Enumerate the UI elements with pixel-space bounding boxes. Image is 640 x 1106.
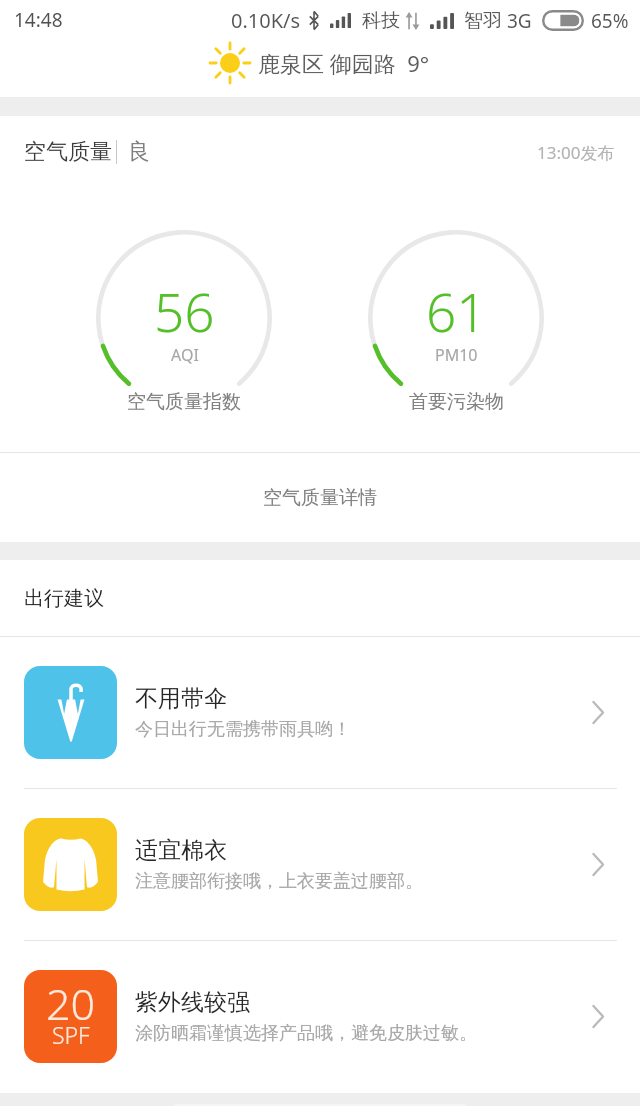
staticText: 紫外线较强 [135,988,250,1017]
staticText: 不用带伞 [135,684,227,713]
staticText: 出行建议 [24,586,104,611]
button[interactable]: 20 [0,941,640,1092]
button[interactable]: 空气质量详情 [0,453,640,542]
staticText: 今日出行无需携带雨具哟！ [135,718,351,741]
staticText: SPF [52,1019,90,1050]
other: 不用带伞 [592,702,604,723]
staticText: PM10 [435,344,478,366]
staticText: 20 [46,974,96,1033]
staticText: AQI [171,344,199,366]
other: 适宜棉衣 [592,854,604,875]
button[interactable]: 不用带伞 [0,637,640,788]
staticText: 注意腰部衔接哦，上衣要盖过腰部。 [135,870,423,893]
staticText: 良 [128,138,150,166]
staticText: 首要污染物 [409,390,504,414]
staticText: 61 [426,275,487,347]
staticText: 56 [154,275,215,347]
staticText: 适宜棉衣 [135,836,227,865]
staticText: 智羽 [464,9,502,33]
staticText: 科技 [362,9,400,33]
staticText: 3G [507,8,532,34]
staticText: 空气质量详情 [263,486,377,510]
staticText: 空气质量指数 [127,390,241,414]
staticText: 涂防晒霜谨慎选择产品哦，避免皮肤过敏。 [135,1022,477,1045]
staticText: 鹿泉区 御园路 9° [258,48,430,78]
staticText: 13:00发布 [537,141,615,164]
staticText: 空气质量 [24,138,112,166]
staticText: 0.10K/s [231,7,301,34]
staticText: 65% [591,8,629,34]
staticText: 14:48 [14,7,63,33]
button[interactable]: 适宜棉衣 [0,789,640,940]
other: 紫外线较强 [592,1006,604,1027]
